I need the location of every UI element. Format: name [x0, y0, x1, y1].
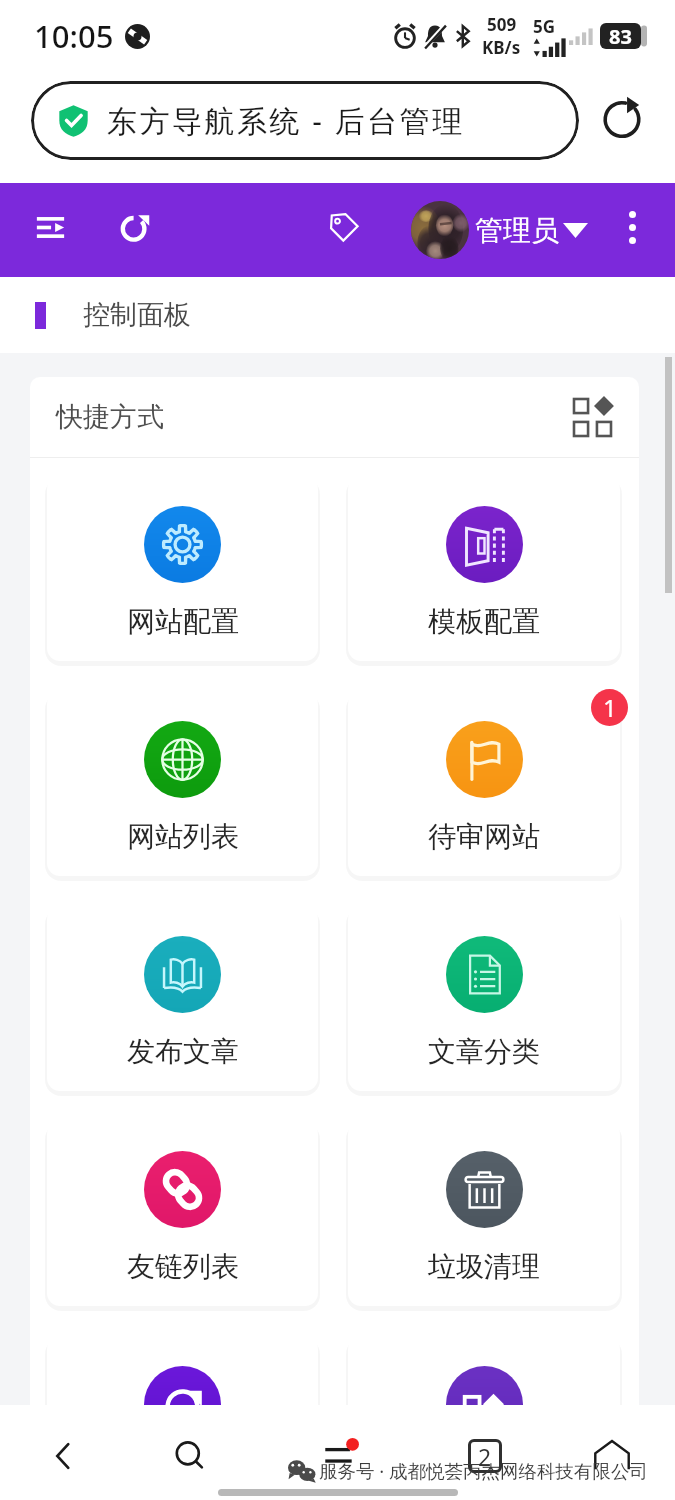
button[interactable]: Reload page	[588, 83, 656, 151]
staticText: 模板配置	[428, 604, 540, 639]
button[interactable]: More options	[605, 200, 659, 254]
staticText: 东方导航系统 - 后台管理	[107, 100, 465, 141]
button[interactable]: 待审网站	[348, 691, 620, 876]
staticText: 2	[478, 1441, 492, 1472]
staticText: KB/s	[482, 36, 521, 59]
button[interactable]: Tabs: 2 open	[442, 1413, 528, 1499]
staticText: 管理员	[475, 213, 559, 248]
staticText: 83	[609, 23, 632, 49]
button[interactable]: 系统工具	[348, 1336, 620, 1405]
button[interactable]: Refresh	[107, 198, 165, 256]
staticText: 文章分类	[428, 1034, 540, 1069]
staticText: 友链列表	[127, 1249, 239, 1284]
staticText: 发布文章	[127, 1034, 239, 1069]
staticText: 网站配置	[127, 604, 239, 639]
button[interactable]: Home	[569, 1413, 655, 1499]
button[interactable]: 文章分类	[348, 906, 620, 1091]
button[interactable]: 垃圾清理	[348, 1121, 620, 1306]
button[interactable]: Search	[147, 1413, 233, 1499]
button[interactable]: 网站列表	[47, 691, 318, 876]
staticText: 控制面板	[83, 298, 191, 332]
button[interactable]: 友链列表	[47, 1121, 318, 1306]
staticText: 快捷方式	[56, 400, 164, 434]
staticText: 垃圾清理	[428, 1249, 540, 1284]
button[interactable]: 东方导航系统 - 后台管理	[31, 81, 579, 160]
staticText: 5G	[533, 15, 556, 38]
button[interactable]: Tag	[315, 198, 373, 256]
staticText: 1	[603, 691, 617, 724]
staticText: 509	[487, 13, 517, 36]
button[interactable]: 发布文章	[47, 906, 318, 1091]
button[interactable]: Menu	[21, 198, 79, 256]
staticText: 服务号 · 成都悦荟丙杰网络科技有限公司	[319, 1458, 649, 1483]
button[interactable]: Menu	[299, 1411, 385, 1497]
button[interactable]: 网站配置	[47, 476, 318, 661]
staticText: 待审网站	[428, 819, 540, 854]
button[interactable]: 管理员	[408, 196, 591, 264]
staticText: 10:05	[34, 15, 114, 57]
button[interactable]: Back	[20, 1413, 106, 1499]
staticText: 网站列表	[127, 819, 239, 854]
button[interactable]: 模板配置	[348, 476, 620, 661]
button[interactable]: 更新缓存	[47, 1336, 318, 1405]
